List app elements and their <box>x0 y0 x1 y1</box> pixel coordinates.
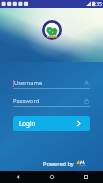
staticText: Username <box>14 79 43 87</box>
button[interactable]: Password <box>13 96 90 107</box>
staticText: Powered by <box>43 160 74 168</box>
staticText: 4:35 <box>92 1 102 8</box>
button[interactable]: Login <box>13 116 90 131</box>
button[interactable]: Back <box>0 171 35 183</box>
button[interactable]: Recents <box>69 171 103 183</box>
button[interactable]: Home <box>35 171 69 183</box>
staticText: Login <box>19 119 36 128</box>
staticText: Password <box>13 97 40 105</box>
button[interactable]: Username <box>13 78 90 89</box>
